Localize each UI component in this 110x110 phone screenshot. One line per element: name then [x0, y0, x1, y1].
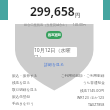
staticText: 残高更新 — [48, 33, 61, 37]
staticText: 円 — [75, 12, 80, 18]
staticText: うち普通預金 — [83, 81, 105, 86]
button[interactable]: 手続きを行う — [12, 101, 34, 108]
button[interactable]: 残高1145.00円 — [80, 87, 105, 94]
staticText: 総合口座残高（当座貸越含む） 145.00円 — [24, 23, 87, 27]
staticText: 残高を見る — [12, 81, 31, 86]
button[interactable]: 10月12日（水曜日） — [34, 47, 77, 57]
button[interactable]: WR123 ほか123 — [77, 94, 105, 101]
button[interactable]: ご利用可能額・ご利用明細 — [61, 73, 105, 80]
staticText: 299,658 — [30, 3, 75, 19]
staticText: 残高1145.00円 — [80, 88, 105, 93]
button[interactable]: 取引明細を見る — [12, 87, 38, 94]
button[interactable]: 残高を見る — [12, 80, 31, 87]
staticText: 10月12日（水曜日） — [34, 47, 77, 57]
button[interactable]: TAXZ7858 — [88, 101, 105, 108]
button[interactable]: 詳細を見る — [43, 61, 65, 67]
staticText: 詳細を見る — [44, 62, 65, 67]
staticText: TAXZ7858 — [88, 102, 105, 107]
button[interactable]: 残高更新 — [46, 31, 62, 39]
staticText: WR123 ほか123 — [77, 95, 105, 100]
staticText: 手続きを行う — [12, 102, 34, 107]
button[interactable]: うち普通預金 — [83, 80, 105, 87]
staticText: 振込先登録 — [12, 95, 30, 100]
button[interactable]: 振込・振替する — [12, 73, 38, 80]
staticText: ご利用可能額・ご利用明細 — [61, 74, 105, 79]
staticText: 振込・振替する — [12, 74, 38, 79]
button[interactable]: 振込先登録 — [12, 94, 30, 101]
staticText: 取引明細を見る — [12, 88, 38, 93]
